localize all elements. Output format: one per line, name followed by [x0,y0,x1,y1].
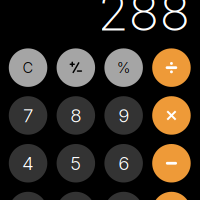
button[interactable]: Multiply [152,96,191,135]
staticText: C [22,59,33,76]
staticText: 4 [22,152,34,175]
button[interactable]: 3 [104,192,143,200]
button[interactable]: 6 [104,144,143,182]
button[interactable]: 2 [57,192,95,200]
button[interactable]: Minus [152,144,191,182]
button[interactable]: 5 [57,144,95,182]
button[interactable]: 7 [9,96,47,135]
button[interactable]: Plus minus [57,48,95,87]
staticText: 7 [23,104,33,127]
button[interactable]: 4 [9,144,47,182]
button[interactable]: C [9,48,47,87]
button[interactable]: 1 [9,192,47,200]
button[interactable]: 8 [57,96,95,135]
staticText: 6 [118,152,129,175]
staticText: 288 [97,0,190,43]
staticText: % [117,59,131,76]
button[interactable]: % [104,48,143,87]
staticText: 5 [70,152,81,175]
staticText: 9 [118,104,129,127]
staticText: 8 [70,104,81,127]
button[interactable]: Plus [152,192,191,200]
button[interactable]: 9 [104,96,143,135]
button[interactable]: Divide [152,48,191,87]
